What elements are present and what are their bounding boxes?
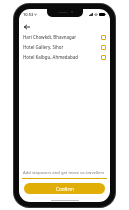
button[interactable]: Select stop Hotel Gallery, Sihor [101, 45, 106, 50]
staticText: Hari Chowkdi, Bhavnagar [23, 34, 98, 40]
button[interactable]: Hotel Kalbgu, Ahmedabad [19, 52, 110, 62]
button[interactable]: Hari Chowkdi, Bhavnagar [19, 32, 110, 42]
staticText: Confirm [56, 186, 74, 192]
button[interactable]: Hotel Gallery, Sihor [19, 42, 110, 52]
button[interactable]: Confirm [24, 183, 105, 194]
staticText: Hotel Gallery, Sihor [23, 44, 98, 50]
button[interactable]: Select stop Hotel Kalbgu, Ahmedabad [101, 55, 106, 60]
button[interactable]: Back [22, 22, 31, 31]
button[interactable]: Select stop Hari Chowkdi, Bhavnagar [101, 35, 106, 40]
staticText: 10:53 [23, 12, 34, 17]
staticText: Hotel Kalbgu, Ahmedabad [23, 54, 98, 60]
staticText: Add stopovers and get more co-travellers [23, 170, 105, 176]
